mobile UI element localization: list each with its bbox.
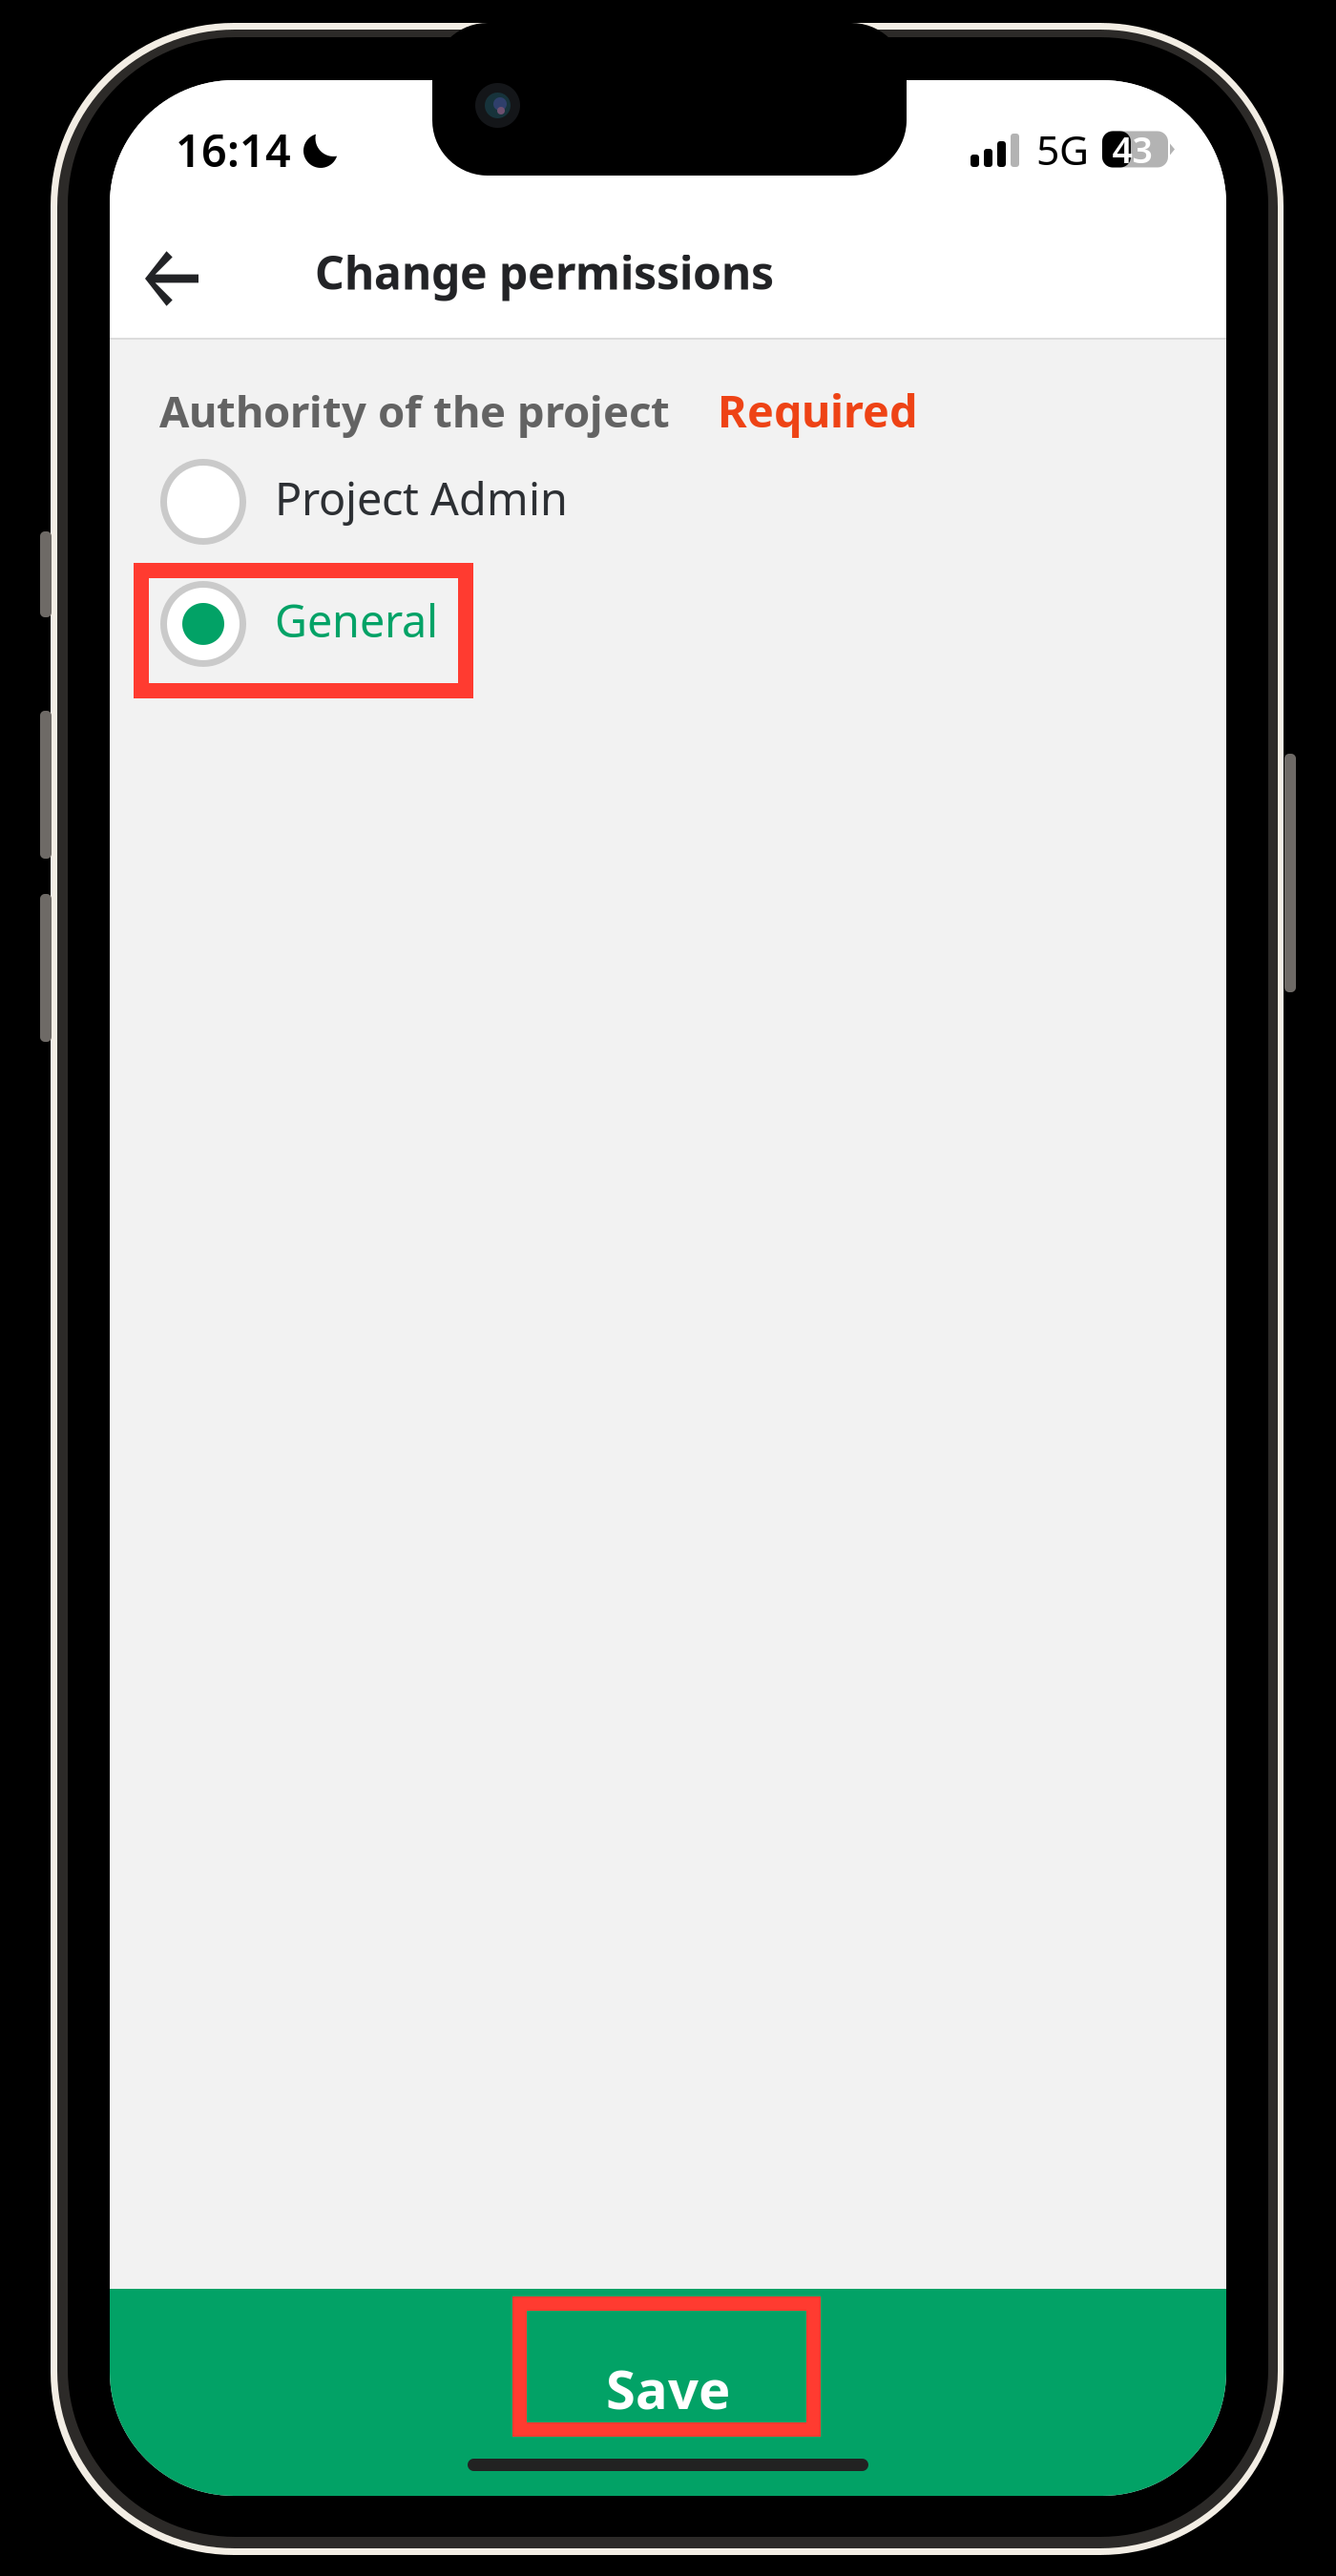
staticText: Save	[606, 2353, 730, 2424]
staticText: Required	[718, 381, 917, 440]
button[interactable]: Project Admin	[110, 441, 1226, 563]
button[interactable]: Back	[127, 221, 217, 338]
staticText: 43	[1112, 126, 1152, 173]
staticText: Project Admin	[275, 468, 568, 528]
staticText: 16:14	[176, 120, 291, 179]
staticText: General	[275, 591, 438, 650]
button[interactable]: Save	[110, 2289, 1226, 2496]
button[interactable]: General	[110, 563, 1226, 685]
staticText: Change permissions	[315, 241, 774, 302]
staticText: 5G	[1036, 122, 1089, 176]
staticText: Authority of the project	[159, 382, 670, 439]
